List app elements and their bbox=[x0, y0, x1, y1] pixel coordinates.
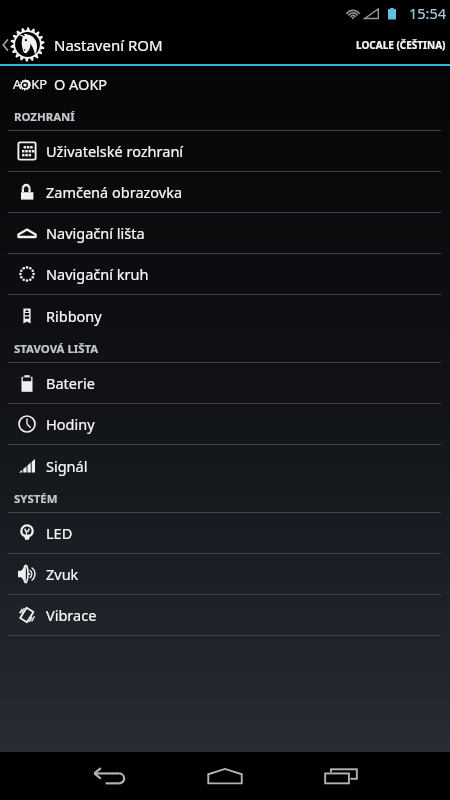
staticText: Hodiny bbox=[46, 414, 95, 434]
staticText: SYSTÉM bbox=[14, 491, 58, 507]
staticText: Baterie bbox=[46, 373, 95, 393]
button[interactable]: LED bbox=[0, 513, 450, 553]
button[interactable]: Navigační kruh bbox=[0, 254, 450, 294]
staticText: 15:54 bbox=[409, 3, 447, 23]
button[interactable]: AOKP bbox=[0, 69, 450, 99]
staticText: Vibrace bbox=[46, 605, 97, 625]
staticText: Zvuk bbox=[46, 564, 79, 584]
staticText: Navigační lišta bbox=[46, 223, 145, 243]
button[interactable]: Vibrace bbox=[0, 595, 450, 635]
staticText: O AOKP bbox=[54, 74, 108, 94]
button[interactable]: Home bbox=[167, 752, 283, 800]
staticText: Signál bbox=[46, 456, 88, 476]
staticText: LED bbox=[46, 523, 73, 543]
button[interactable]: Uživatelské rozhraní bbox=[0, 131, 450, 171]
staticText: Uživatelské rozhraní bbox=[46, 141, 184, 161]
button[interactable]: Ribbony bbox=[0, 295, 450, 336]
button[interactable]: LOCALE (ČEŠTINA) bbox=[347, 32, 450, 58]
staticText: Ribbony bbox=[46, 306, 102, 326]
staticText: Nastavení ROM bbox=[54, 35, 163, 55]
staticText: Zamčená obrazovka bbox=[46, 182, 183, 202]
staticText: STAVOVÁ LIŠTA bbox=[14, 341, 99, 357]
button[interactable]: Up bbox=[0, 27, 45, 62]
button[interactable]: Recent apps bbox=[283, 752, 399, 800]
button[interactable]: Zamčená obrazovka bbox=[0, 172, 450, 212]
staticText: LOCALE (ČEŠTINA) bbox=[356, 38, 446, 52]
staticText: Navigační kruh bbox=[46, 264, 149, 284]
button[interactable]: Baterie bbox=[0, 363, 450, 403]
button[interactable]: Signál bbox=[0, 445, 450, 486]
staticText: ROZHRANÍ bbox=[14, 109, 75, 125]
button[interactable]: Hodiny bbox=[0, 404, 450, 444]
button[interactable]: Zvuk bbox=[0, 554, 450, 594]
staticText: AOKP bbox=[13, 75, 48, 93]
button[interactable]: Navigační lišta bbox=[0, 213, 450, 253]
button[interactable]: Back bbox=[51, 752, 167, 800]
